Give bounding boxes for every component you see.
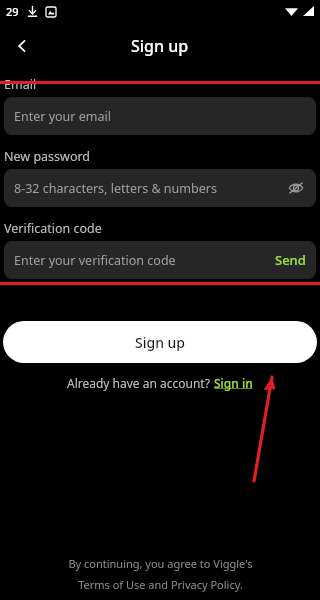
staticText: Sign up xyxy=(131,35,189,57)
button[interactable]: Enter your verification code xyxy=(4,241,316,279)
staticText: Email xyxy=(4,76,37,93)
staticText: 29 xyxy=(6,4,19,19)
staticText: Sign in xyxy=(214,375,253,391)
staticText: Verification code xyxy=(4,220,102,237)
button[interactable]: Enter your email xyxy=(4,97,316,135)
staticText: Sign up xyxy=(135,333,186,352)
staticText: Send xyxy=(275,251,306,269)
button[interactable]: Sign in xyxy=(214,375,253,391)
button[interactable]: Terms of Use and Privacy Policy. xyxy=(78,577,243,592)
staticText: Enter your verification code xyxy=(14,252,275,269)
staticText: Terms of Use and Privacy Policy. xyxy=(78,577,243,592)
button[interactable]: Sign up xyxy=(3,321,317,363)
staticText: By continuing, you agree to Viggle's xyxy=(68,556,253,571)
staticText: 8-32 characters, letters & numbers xyxy=(14,180,280,197)
button[interactable]: Send xyxy=(275,251,306,269)
button[interactable]: Back xyxy=(0,24,44,68)
staticText: Enter your email xyxy=(14,108,312,125)
button[interactable]: Show password xyxy=(280,172,312,204)
staticText: New password xyxy=(4,148,91,165)
staticText: Already have an account? xyxy=(67,375,214,391)
button[interactable]: 8-32 characters, letters & numbers xyxy=(4,169,316,207)
